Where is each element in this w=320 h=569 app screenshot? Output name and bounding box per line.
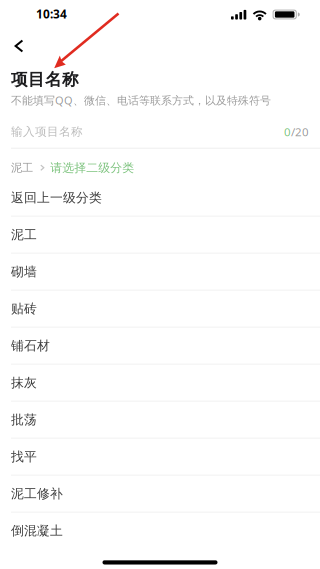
staticText: 不能填写QQ、微信、电话等联系方式，以及特殊符号 — [11, 93, 271, 108]
staticText: 贴砖 — [11, 301, 37, 317]
button[interactable]: 倒混凝土 — [0, 513, 320, 550]
staticText: 10:34 — [36, 6, 67, 22]
button[interactable]: 泥工 — [0, 149, 320, 180]
staticText: 泥工 — [11, 161, 33, 175]
staticText: 批荡 — [11, 412, 37, 428]
staticText: 项目名称 — [11, 69, 79, 90]
staticText: 倒混凝土 — [11, 523, 63, 539]
staticText: 找平 — [11, 449, 37, 465]
staticText: 输入项目名称 — [11, 124, 83, 139]
button[interactable]: 砌墙 — [0, 254, 320, 291]
button[interactable]: 泥工修补 — [0, 476, 320, 513]
staticText: 泥工 — [11, 227, 37, 243]
button[interactable]: 泥工 — [0, 217, 320, 254]
staticText: 0 — [284, 124, 291, 139]
staticText: 泥工修补 — [11, 486, 63, 502]
button[interactable]: 返回上一级分类 — [0, 180, 320, 217]
staticText: 铺石材 — [11, 338, 50, 354]
button[interactable]: 贴砖 — [0, 291, 320, 328]
staticText: 砌墙 — [11, 264, 37, 280]
button[interactable]: 抹灰 — [0, 365, 320, 402]
staticText: 返回上一级分类 — [11, 190, 102, 206]
button[interactable]: 铺石材 — [0, 328, 320, 365]
staticText: /20 — [291, 124, 309, 139]
button[interactable]: 找平 — [0, 439, 320, 476]
staticText: 抹灰 — [11, 375, 37, 391]
button[interactable]: 输入项目名称 — [0, 119, 320, 145]
button[interactable]: 批荡 — [0, 402, 320, 439]
staticText: 请选择二级分类 — [50, 160, 134, 175]
button[interactable]: Back — [3, 28, 35, 64]
